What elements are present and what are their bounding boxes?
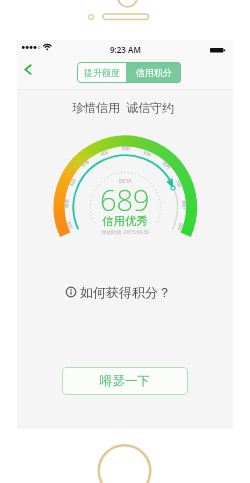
- button[interactable]: 嘚瑟一下: [62, 367, 188, 395]
- staticText: 嘚瑟一下: [100, 373, 150, 389]
- staticText: 评估时间 2015.04.30: [101, 229, 150, 236]
- staticText: 信用积分: [136, 67, 172, 78]
- staticText: 如何获得积分？: [80, 284, 171, 300]
- button[interactable]: 信用积分: [126, 62, 181, 83]
- staticText: 信用优秀: [102, 214, 148, 228]
- button[interactable]: 如何获得积分？: [62, 283, 188, 301]
- staticText: 提升额度: [84, 67, 120, 78]
- staticText: BETA: [119, 177, 132, 184]
- staticText: 9:23 AM: [110, 44, 141, 55]
- button[interactable]: [19, 58, 41, 80]
- button[interactable]: 提升额度: [77, 62, 126, 83]
- staticText: 689: [100, 180, 150, 219]
- staticText: 珍惜信用 诚信守约: [72, 99, 175, 115]
